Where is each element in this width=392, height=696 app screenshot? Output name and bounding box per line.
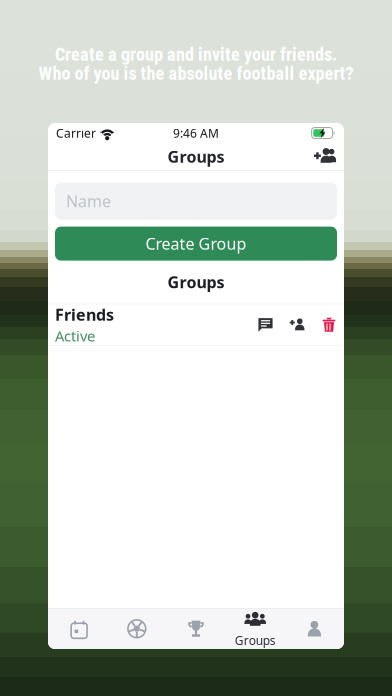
staticText: Create Group [145,233,246,254]
button[interactable]: Friends [48,304,344,345]
staticText: Groups [167,146,224,167]
staticText: 9:46 AM [173,125,219,141]
button[interactable]: Profile [285,609,344,649]
button[interactable]: Groups [226,609,285,649]
button[interactable]: Matches [48,609,107,649]
staticText: Groups [235,632,276,648]
staticText: Groups [167,271,224,293]
staticText: Active [55,326,95,346]
button[interactable]: Create Group [48,227,344,261]
staticText: Name [66,190,111,212]
staticText: Carrier [56,125,96,141]
staticText: Friends [55,304,114,325]
button[interactable]: Games [107,609,166,649]
button[interactable]: Standings [166,609,226,649]
button[interactable]: Add group [304,135,344,178]
staticText: Create a group and invite your friends. [55,44,337,65]
staticText: Who of you is the absolute football expe… [38,63,353,84]
